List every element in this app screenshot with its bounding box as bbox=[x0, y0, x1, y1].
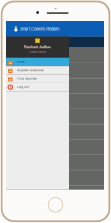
button[interactable]: Register a Sponsor bbox=[6, 66, 69, 75]
staticText: Log out bbox=[17, 85, 29, 89]
staticText: Prashant Jadhav bbox=[24, 45, 51, 49]
staticText: Smart Cookies Program bbox=[20, 27, 59, 31]
staticText: Register a Sponsor bbox=[17, 69, 44, 72]
staticText: Home bbox=[17, 60, 25, 64]
button[interactable]: Account bbox=[12, 21, 20, 36]
button[interactable]: Home bbox=[6, 58, 69, 66]
button[interactable]: Find Sponsor bbox=[6, 74, 69, 83]
staticText: (Sales Person) bbox=[29, 50, 46, 54]
button[interactable]: Log out bbox=[6, 83, 69, 91]
staticText: Find Sponsor bbox=[17, 77, 37, 80]
